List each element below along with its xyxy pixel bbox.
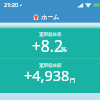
staticText: +4,938 <box>24 65 70 85</box>
staticText: 運用収益額 <box>39 63 62 69</box>
button[interactable]: ホーム <box>33 13 60 21</box>
staticText: 円 <box>70 77 76 84</box>
staticText: % <box>61 45 67 55</box>
other: Location <box>19 4 22 7</box>
staticText: 21:20 <box>4 1 19 8</box>
staticText: 運用収益率 <box>39 32 62 38</box>
staticText: +8.2 <box>32 35 63 56</box>
staticText: ホーム <box>41 13 60 21</box>
